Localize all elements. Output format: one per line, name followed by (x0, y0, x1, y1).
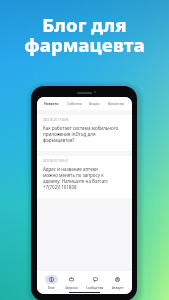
staticText: Сообщения (86, 286, 104, 290)
button[interactable]: 2022-06-01 13:06:31 (37, 156, 132, 198)
staticText: 2022-06-01 13:06:31 (43, 159, 69, 163)
staticText: Запросы (65, 286, 78, 290)
staticText: События (67, 101, 82, 106)
staticText: Аккаунт (112, 286, 124, 290)
staticText: Новости (44, 101, 59, 106)
button[interactable]: Новости (43, 99, 60, 108)
staticText: Блог (48, 286, 55, 290)
staticText: Акции (89, 101, 100, 106)
staticText: Как работает система мобильного приложен… (43, 125, 119, 143)
staticText: Блог для фармацевта (24, 12, 145, 58)
button[interactable]: События (66, 99, 83, 108)
button[interactable]: Блог (45, 275, 58, 290)
button[interactable]: Акции (88, 99, 101, 108)
staticText: Адрес и название аптеки можно менять по … (43, 166, 109, 190)
button[interactable]: Сообщения (86, 275, 104, 290)
staticText: Вакансии (108, 101, 125, 106)
button[interactable]: Аккаунт (111, 275, 124, 290)
button[interactable]: Вакансии (107, 99, 126, 108)
staticText: 2022-06-02 17:24:08 (43, 118, 69, 122)
button[interactable]: Запросы (65, 275, 78, 290)
button[interactable]: 2022-06-02 17:24:08 (37, 115, 132, 151)
